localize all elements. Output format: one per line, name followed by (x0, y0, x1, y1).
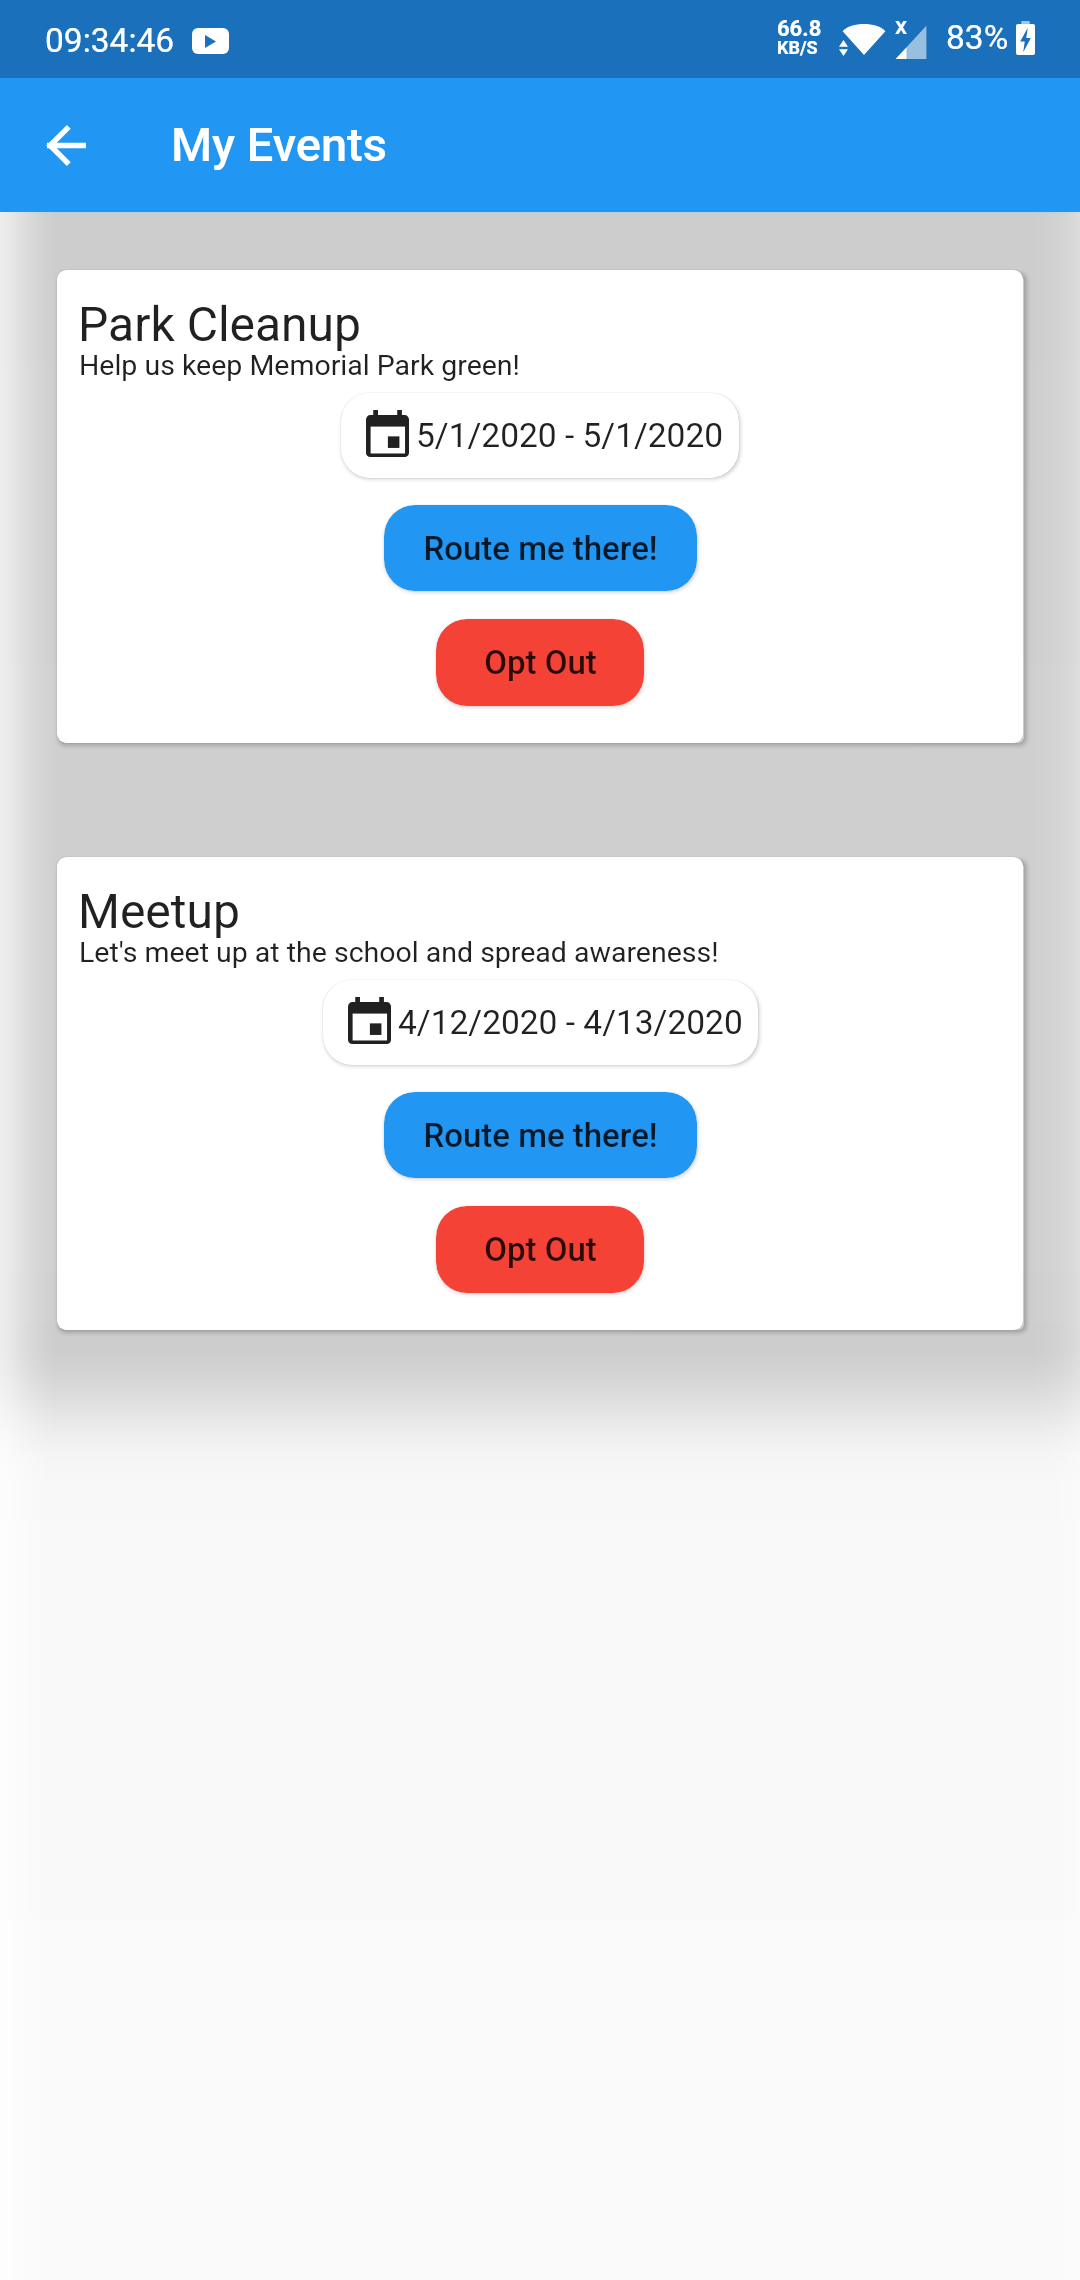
staticText: 5/1/2020 - 5/1/2020 (416, 416, 724, 455)
button[interactable]: 4/12/2020 - 4/13/2020 (323, 980, 758, 1065)
staticText: 66.8 (777, 16, 822, 42)
staticText: KB/S (777, 37, 818, 58)
staticText: Park Cleanup (78, 296, 362, 352)
button[interactable]: Opt Out (436, 1206, 644, 1293)
staticText: Opt Out (484, 643, 597, 682)
button[interactable]: Back (23, 102, 110, 189)
staticText: 09:34:46 (45, 21, 175, 60)
staticText: Help us keep Memorial Park green! (79, 349, 520, 382)
staticText: 83% (946, 18, 1009, 57)
staticText: Meetup (78, 883, 240, 939)
button[interactable]: Opt Out (436, 619, 644, 706)
staticText: My Events (171, 117, 387, 172)
button[interactable]: Park Cleanup (57, 270, 1023, 743)
button[interactable]: Meetup (57, 857, 1023, 1330)
staticText: Route me there! (423, 1116, 658, 1155)
button[interactable]: Route me there! (384, 1092, 697, 1178)
staticText: Route me there! (423, 529, 658, 568)
staticText: x (895, 12, 908, 40)
staticText: Opt Out (484, 1230, 597, 1269)
staticText: Let's meet up at the school and spread a… (79, 936, 719, 969)
button[interactable]: 5/1/2020 - 5/1/2020 (341, 393, 739, 478)
staticText: 4/12/2020 - 4/13/2020 (398, 1003, 743, 1042)
button[interactable]: Route me there! (384, 505, 697, 591)
